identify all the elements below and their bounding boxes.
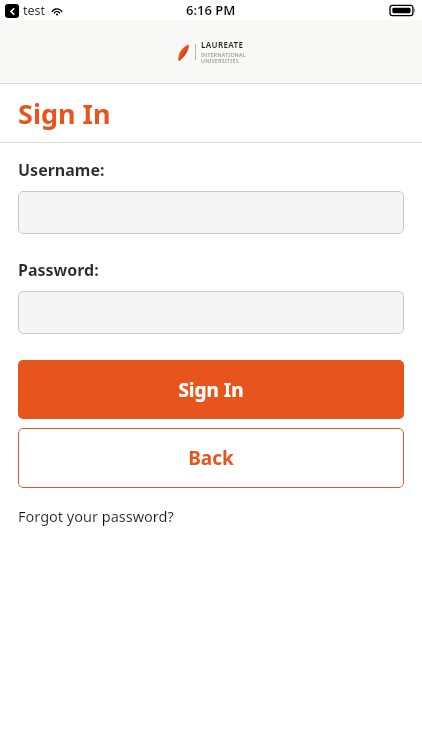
staticText: INTERNATIONAL	[201, 51, 246, 58]
button[interactable]: Back	[5, 4, 19, 18]
staticText: Sign In	[18, 95, 111, 132]
button[interactable]: Sign In	[18, 360, 404, 419]
staticText: Back	[188, 445, 234, 471]
button[interactable]: Back	[18, 428, 404, 488]
staticText: 6:16 PM	[186, 1, 236, 19]
button[interactable]: Text input field	[18, 191, 404, 234]
staticText: Username:	[18, 159, 105, 181]
staticText: UNIVERSITIES	[201, 57, 239, 64]
staticText: Sign In	[178, 377, 244, 403]
button[interactable]: Text input field	[18, 291, 404, 334]
staticText: Forgot your password?	[18, 506, 174, 526]
staticText: Password:	[18, 259, 99, 281]
button[interactable]: Forgot your password?	[18, 506, 174, 526]
staticText: test	[23, 2, 46, 19]
staticText: LAUREATE	[201, 39, 244, 50]
